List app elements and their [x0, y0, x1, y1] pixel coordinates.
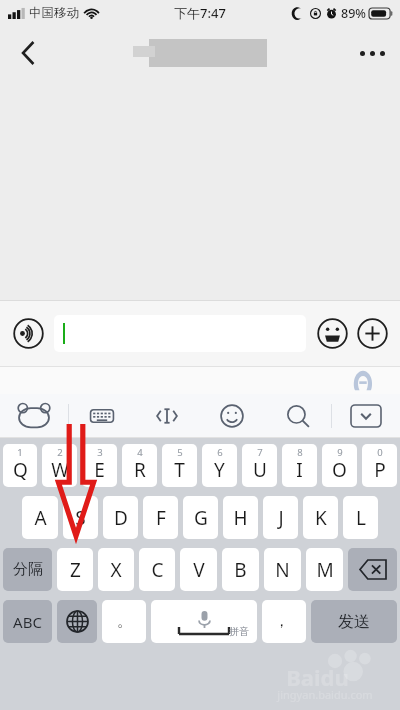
button[interactable]: V	[180, 548, 217, 591]
button[interactable]: Hide keyboard	[332, 394, 400, 438]
staticText: 6	[217, 446, 223, 459]
staticText: 。	[117, 612, 132, 631]
button[interactable]: 5	[162, 444, 197, 487]
staticText: P	[374, 457, 386, 483]
button[interactable]: Z	[57, 548, 93, 591]
button[interactable]: M	[306, 548, 343, 591]
staticText: G	[194, 505, 208, 531]
button[interactable]: 。	[102, 600, 146, 643]
button[interactable]: C	[139, 548, 175, 591]
staticText: 2	[57, 446, 63, 459]
staticText: D	[114, 505, 128, 531]
button[interactable]: N	[264, 548, 301, 591]
staticText: 89%	[341, 5, 366, 22]
staticText: Q	[13, 457, 28, 483]
button[interactable]: Baidu input	[0, 394, 68, 438]
button[interactable]: cursor	[134, 394, 199, 438]
staticText: F	[156, 505, 166, 531]
staticText: B	[234, 557, 247, 583]
button[interactable]: More options	[350, 31, 394, 75]
staticText: ，	[274, 612, 289, 631]
button[interactable]: ，	[262, 600, 306, 643]
button[interactable]: J	[263, 496, 298, 539]
staticText: N	[275, 557, 290, 583]
staticText: V	[193, 557, 205, 583]
staticText: 1	[17, 446, 23, 459]
button[interactable]: 发送	[311, 600, 397, 643]
staticText: J	[278, 505, 284, 531]
staticText: K	[315, 505, 327, 531]
button[interactable]: X	[98, 548, 134, 591]
button[interactable]: More functions	[354, 315, 390, 351]
button[interactable]: 1	[3, 444, 37, 487]
staticText: 5	[177, 446, 183, 459]
staticText: 中国移动	[29, 5, 79, 21]
button[interactable]: H	[223, 496, 258, 539]
button[interactable]: 7	[242, 444, 277, 487]
button[interactable]: B	[222, 548, 259, 591]
button[interactable]: F	[143, 496, 178, 539]
staticText: E	[94, 457, 105, 483]
button[interactable]: 3	[82, 444, 117, 487]
staticText: Z	[70, 557, 81, 583]
button[interactable]: Backspace	[348, 548, 397, 591]
staticText: ABC	[13, 612, 42, 632]
button[interactable]: L	[343, 496, 378, 539]
staticText: 下午7:47	[174, 4, 226, 22]
button[interactable]: Emoji	[314, 315, 350, 351]
button[interactable]: 4	[122, 444, 157, 487]
staticText: 发送	[338, 612, 370, 632]
button[interactable]: 2	[42, 444, 77, 487]
staticText: 8	[297, 446, 303, 459]
staticText: I	[296, 457, 303, 483]
staticText: 0	[377, 446, 383, 459]
staticText: 9	[337, 446, 343, 459]
button[interactable]: 8	[282, 444, 317, 487]
staticText: L	[356, 505, 366, 531]
staticText: Baidu	[286, 662, 349, 692]
button[interactable]: Voice input	[10, 315, 46, 351]
button[interactable]: Space 拼音	[151, 600, 257, 643]
staticText: C	[151, 557, 164, 583]
staticText: 3	[97, 446, 103, 459]
button[interactable]: K	[303, 496, 338, 539]
button[interactable]: 9	[322, 444, 357, 487]
button[interactable]: smile	[199, 394, 265, 438]
staticText: T	[174, 457, 185, 483]
button[interactable]: ABC	[3, 600, 52, 643]
button[interactable]: 6	[202, 444, 237, 487]
button[interactable]: kbd	[69, 394, 134, 438]
button[interactable]: search	[265, 394, 331, 438]
button[interactable]: Switch language	[57, 600, 97, 643]
button[interactable]: D	[103, 496, 138, 539]
staticText: H	[233, 505, 248, 531]
staticText: 拼音	[229, 625, 249, 638]
button[interactable]: 0	[362, 444, 397, 487]
staticText: W	[51, 457, 69, 483]
button[interactable]	[54, 315, 306, 352]
button[interactable]: G	[183, 496, 218, 539]
staticText: S	[75, 505, 86, 531]
staticText: 分隔	[13, 560, 43, 579]
staticText: A	[34, 505, 47, 531]
staticText: X	[110, 557, 122, 583]
staticText: R	[134, 457, 146, 483]
staticText: 4	[137, 446, 143, 459]
button[interactable]: A	[22, 496, 58, 539]
staticText: 7	[257, 446, 263, 459]
staticText: U	[253, 457, 267, 483]
staticText: Y	[214, 457, 225, 483]
button[interactable]: 分隔	[3, 548, 52, 591]
staticText: O	[332, 457, 347, 483]
button[interactable]: Back	[6, 31, 50, 75]
button[interactable]: S	[63, 496, 98, 539]
staticText: M	[316, 557, 334, 583]
